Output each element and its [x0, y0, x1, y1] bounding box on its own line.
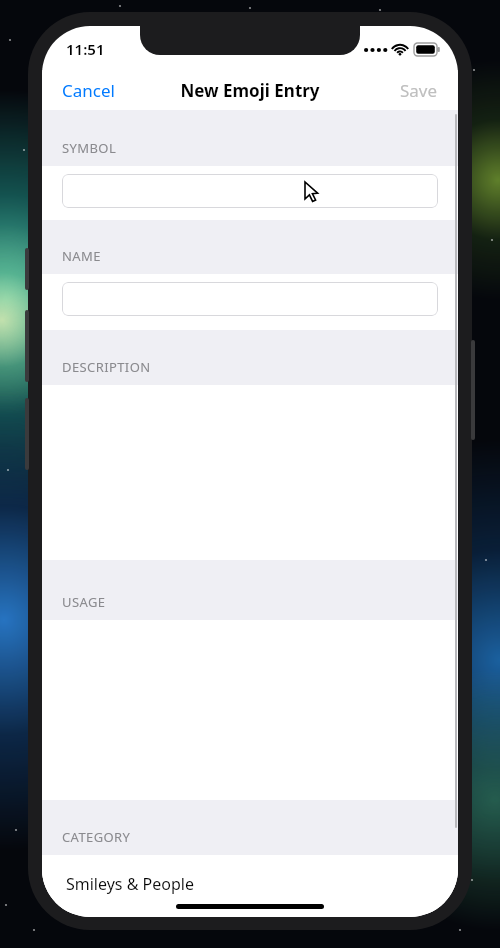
staticText: NAME [62, 247, 101, 265]
button[interactable] [62, 174, 438, 208]
button[interactable] [62, 282, 438, 316]
staticText: USAGE [62, 593, 106, 611]
button[interactable]: Cancel [42, 73, 135, 108]
staticText: 11:51 [66, 39, 105, 59]
staticText: DESCRIPTION [62, 358, 151, 376]
button[interactable]: Save [380, 73, 458, 108]
button[interactable] [42, 385, 458, 560]
staticText: SYMBOL [62, 139, 117, 157]
staticText: CATEGORY [62, 828, 131, 846]
staticText: Smileys & People [66, 873, 194, 895]
staticText: Cancel [62, 79, 115, 102]
staticText: New Emoji Entry [180, 79, 320, 102]
staticText: Save [400, 79, 438, 102]
button[interactable] [42, 620, 458, 800]
button[interactable]: Smileys & People [42, 855, 458, 913]
